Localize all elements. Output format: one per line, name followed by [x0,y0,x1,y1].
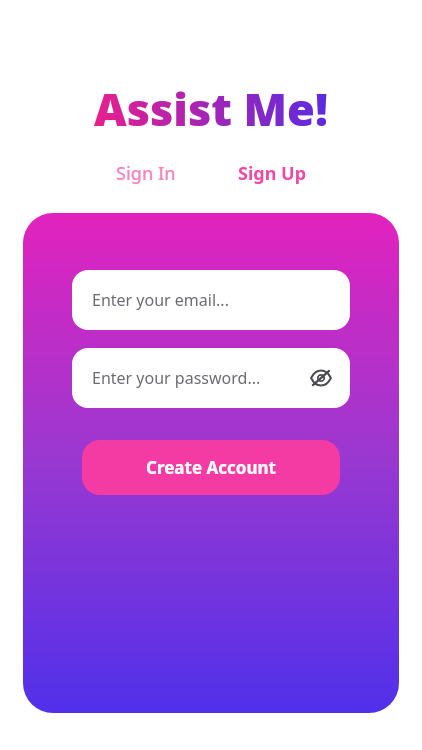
button[interactable]: Create Account [82,440,340,495]
staticText: Create Account [146,456,276,479]
staticText: Enter your email... [92,289,229,311]
staticText: Sign In [116,161,176,186]
staticText: Sign Up [238,161,307,186]
staticText: Assist Me! [94,78,328,139]
staticText: Enter your password... [92,367,261,389]
button[interactable]: Sign Up [228,155,317,192]
button[interactable]: Sign In [106,155,186,192]
button[interactable]: Show password [306,363,336,393]
button[interactable]: Enter your password... [72,348,350,408]
button[interactable]: Enter your email... [72,270,350,330]
